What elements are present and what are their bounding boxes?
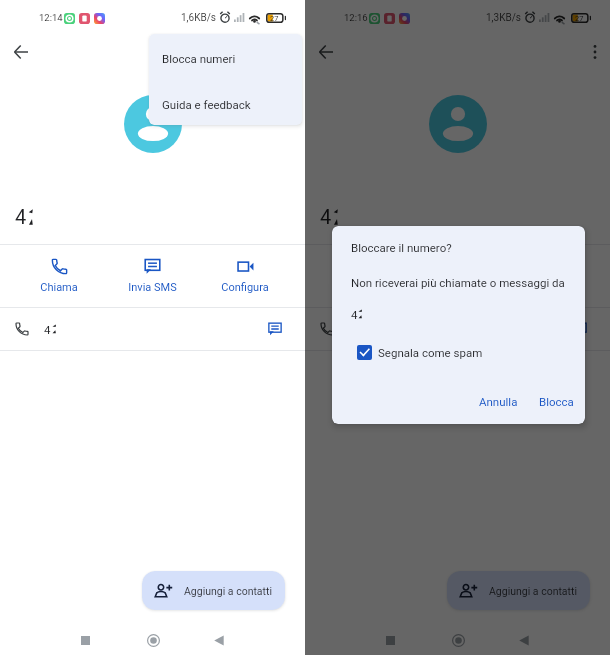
staticText: Configura bbox=[526, 281, 574, 294]
button[interactable]: Back bbox=[504, 625, 544, 655]
staticText: Chiama bbox=[40, 281, 78, 294]
button[interactable]: Back bbox=[3, 34, 39, 70]
button[interactable]: 4 bbox=[0, 308, 305, 350]
button[interactable]: Blocca bbox=[531, 391, 582, 412]
staticText: 27 bbox=[575, 14, 584, 23]
button[interactable]: Segnala come spam bbox=[357, 345, 483, 360]
staticText: 27 bbox=[270, 14, 279, 23]
staticText: 4 bbox=[44, 323, 51, 336]
button[interactable]: Home bbox=[133, 625, 173, 655]
button[interactable]: Back bbox=[308, 34, 344, 70]
button[interactable]: Aggiungi a contatti bbox=[142, 571, 285, 610]
button[interactable]: More options bbox=[577, 34, 610, 70]
button[interactable]: Invia SMS bbox=[412, 245, 502, 307]
staticText: Guida e feedback bbox=[162, 98, 251, 111]
button[interactable]: Annulla bbox=[471, 391, 526, 412]
staticText: Configura bbox=[221, 281, 269, 294]
button[interactable]: Blocca numeri bbox=[149, 34, 302, 79]
staticText: 4 bbox=[351, 308, 358, 321]
staticText: Blocca bbox=[539, 395, 574, 408]
button[interactable]: 4 bbox=[305, 308, 610, 350]
staticText: Invia SMS bbox=[128, 281, 177, 294]
button[interactable]: Configura bbox=[505, 245, 595, 307]
button[interactable]: Back bbox=[199, 625, 239, 655]
staticText: Aggiungi a contatti bbox=[184, 585, 273, 597]
button[interactable]: Home bbox=[438, 625, 478, 655]
staticText: Aggiungi a contatti bbox=[489, 585, 578, 597]
staticText: 4 bbox=[320, 205, 332, 228]
staticText: 4 bbox=[15, 205, 27, 228]
button[interactable]: Chiama bbox=[14, 245, 104, 307]
button[interactable]: Configura bbox=[200, 245, 290, 307]
button[interactable]: Recents bbox=[370, 625, 410, 655]
staticText: Non riceverai più chiamate o messaggi da bbox=[351, 276, 565, 289]
button[interactable]: Invia SMS bbox=[107, 245, 197, 307]
button[interactable]: Send message bbox=[260, 314, 290, 344]
staticText: Segnala come spam bbox=[378, 346, 483, 359]
staticText: 12:14 bbox=[39, 12, 63, 23]
staticText: 12:16 bbox=[344, 12, 368, 23]
button[interactable]: Aggiungi a contatti bbox=[447, 571, 590, 610]
staticText: Chiama bbox=[345, 281, 383, 294]
staticText: Bloccare il numero? bbox=[351, 241, 452, 254]
button[interactable]: Recents bbox=[65, 625, 105, 655]
button[interactable]: Guida e feedback bbox=[149, 79, 302, 125]
staticText: 1,3KB/s bbox=[486, 12, 521, 24]
button[interactable]: Send message bbox=[565, 314, 595, 344]
staticText: Blocca numeri bbox=[162, 52, 236, 65]
staticText: Invia SMS bbox=[433, 281, 482, 294]
staticText: Annulla bbox=[479, 395, 518, 408]
button[interactable]: Chiama bbox=[319, 245, 409, 307]
staticText: 1,6KB/s bbox=[181, 12, 216, 24]
